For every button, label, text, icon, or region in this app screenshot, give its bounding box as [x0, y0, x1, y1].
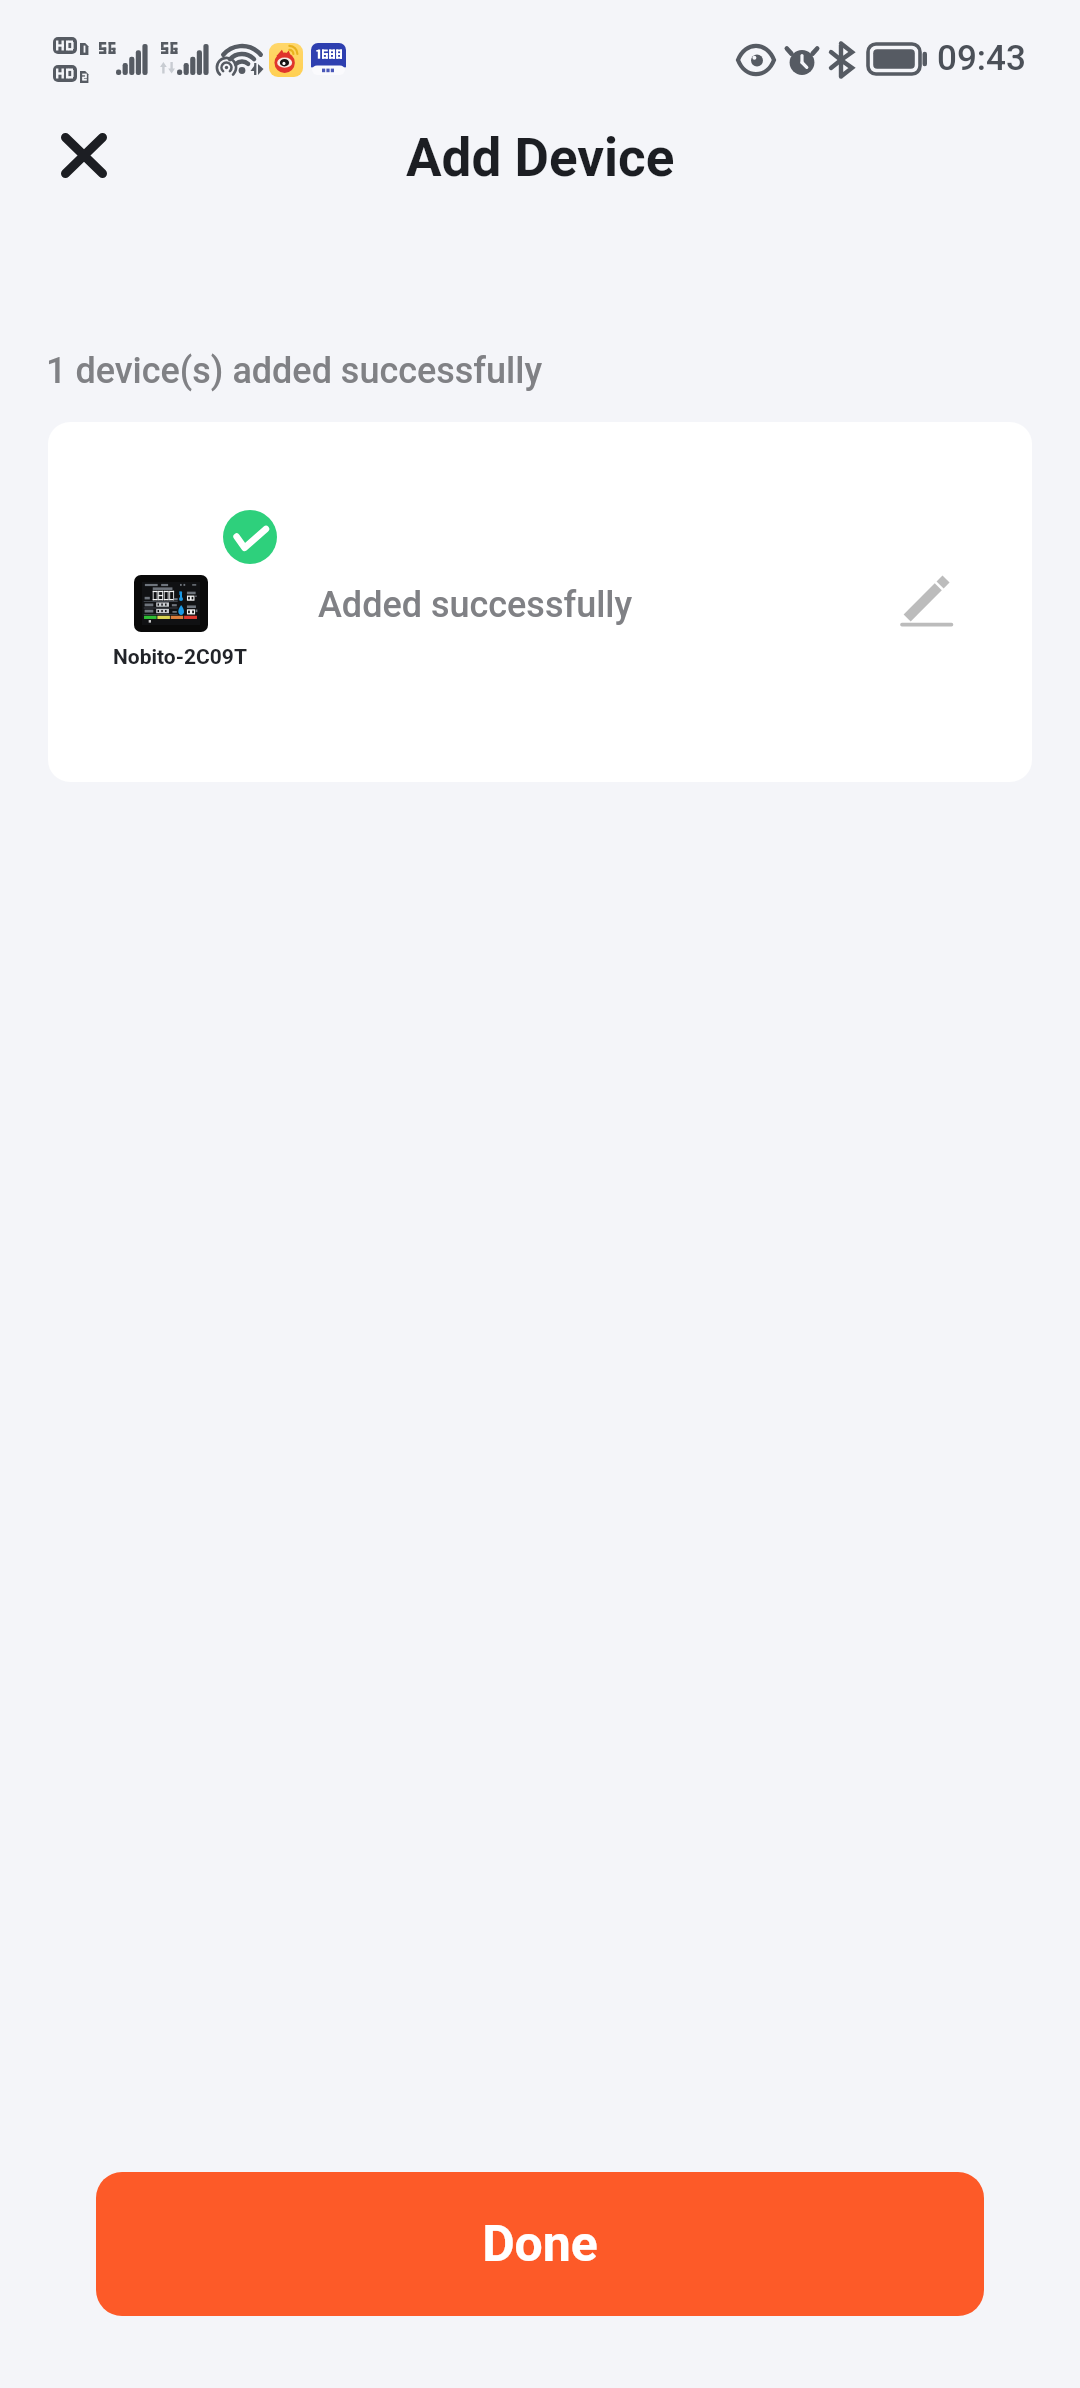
staticText: 1 device(s) added successfully: [46, 350, 543, 392]
staticText: Nobito-2C09T: [113, 645, 247, 670]
staticText: Done: [482, 2215, 598, 2274]
staticText: Add Device: [406, 127, 675, 189]
staticText: Added successfully: [318, 584, 633, 626]
button[interactable]: Rename device: [878, 554, 974, 650]
button[interactable]: Done: [96, 2172, 984, 2316]
staticText: 09:43: [937, 38, 1026, 79]
button[interactable]: Close: [40, 111, 128, 199]
button[interactable]: Nobito-2C09T: [48, 422, 1032, 782]
